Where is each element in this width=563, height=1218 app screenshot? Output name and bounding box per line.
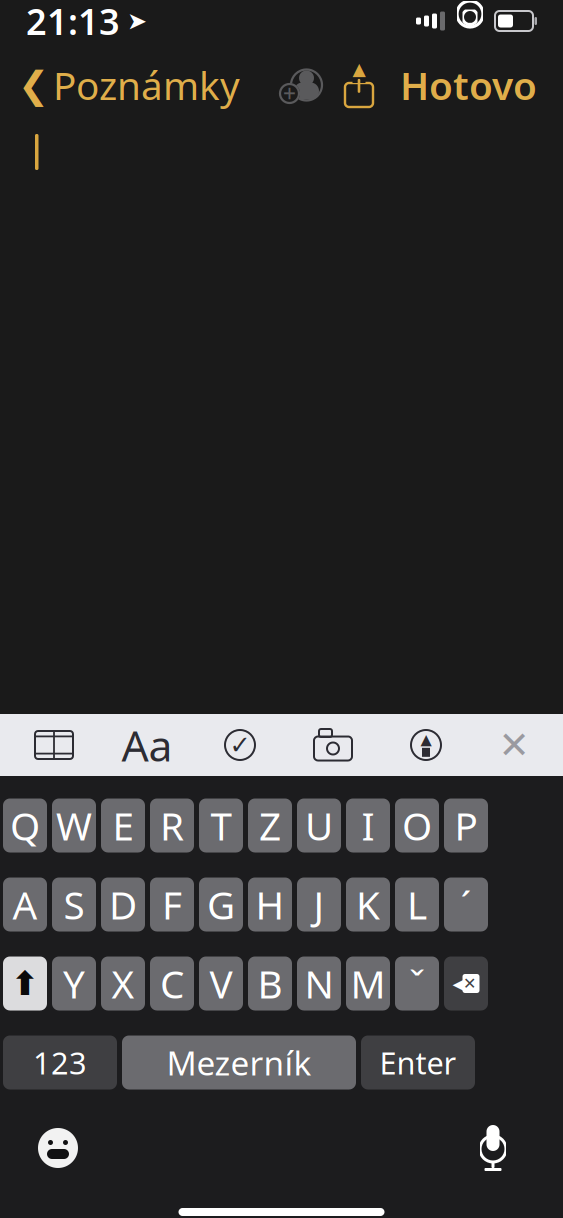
staticText: Y — [63, 958, 85, 1009]
button[interactable]: Emoji — [28, 1118, 88, 1178]
button[interactable]: H — [248, 877, 292, 931]
button[interactable]: Shift — [3, 956, 47, 1010]
button[interactable]: 123 — [3, 1035, 117, 1089]
staticText: M — [350, 958, 385, 1009]
button[interactable]: B — [248, 956, 292, 1010]
staticText: A — [12, 879, 37, 930]
button[interactable]: Y — [52, 956, 96, 1010]
staticText: ❮ — [18, 64, 49, 106]
staticText: X — [111, 958, 134, 1009]
staticText: H — [255, 879, 284, 930]
staticText: F — [162, 879, 182, 930]
button[interactable]: D — [101, 877, 145, 931]
button[interactable]: M — [346, 956, 390, 1010]
staticText: ✓ — [229, 731, 250, 759]
staticText: V — [209, 958, 232, 1009]
staticText: Z — [259, 800, 281, 851]
button[interactable]: Hotovo — [388, 51, 549, 119]
button[interactable]: S — [52, 877, 96, 931]
staticText: K — [356, 879, 380, 930]
staticText: ◀ — [452, 972, 467, 995]
button[interactable]: E — [101, 798, 145, 852]
button[interactable]: Checklist — [208, 717, 272, 773]
staticText: Poznámky — [53, 59, 240, 111]
button[interactable]: Format — [115, 717, 179, 773]
button[interactable]: U — [297, 798, 341, 852]
staticText: ➤ — [127, 7, 147, 35]
button[interactable]: Z — [248, 798, 292, 852]
staticText: Hotovo — [400, 59, 537, 111]
button[interactable]: Dictate — [463, 1118, 523, 1178]
staticText: + — [283, 78, 296, 108]
button[interactable]: K — [346, 877, 390, 931]
staticText: P — [454, 800, 477, 851]
staticText: L — [407, 879, 427, 930]
staticText: N — [304, 958, 333, 1009]
button[interactable]: Markup — [394, 717, 458, 773]
staticText: ´ — [460, 879, 471, 930]
button[interactable]: Table — [22, 717, 86, 773]
button[interactable]: O — [395, 798, 439, 852]
button[interactable]: V — [199, 956, 243, 1010]
button[interactable]: G — [199, 877, 243, 931]
staticText: ✕ — [463, 974, 476, 993]
staticText: I — [361, 800, 374, 851]
staticText: ▲ — [420, 731, 431, 748]
staticText: Q — [10, 800, 40, 851]
staticText: Aa — [121, 717, 172, 773]
staticText: ⬆ — [11, 965, 39, 1002]
staticText: ▲ — [352, 59, 365, 79]
staticText: R — [160, 800, 184, 851]
button[interactable]: ❮ — [8, 51, 250, 119]
button[interactable]: R — [150, 798, 194, 852]
staticText: T — [210, 800, 231, 851]
button[interactable]: Enter — [361, 1035, 475, 1089]
button[interactable]: F — [150, 877, 194, 931]
button[interactable]: N — [297, 956, 341, 1010]
staticText: ✕ — [498, 724, 529, 766]
button[interactable]: P — [444, 798, 488, 852]
staticText: D — [109, 879, 137, 930]
button[interactable]: C — [150, 956, 194, 1010]
staticText: C — [160, 958, 184, 1009]
button[interactable]: Add People — [272, 59, 330, 111]
staticText: E — [112, 800, 133, 851]
staticText: S — [63, 879, 84, 930]
button[interactable]: Hide Keyboard — [487, 717, 541, 773]
staticText: Enter — [379, 1042, 456, 1083]
button[interactable]: Mezerník — [122, 1035, 356, 1089]
staticText: 21:13 — [26, 0, 120, 45]
button[interactable]: I — [346, 798, 390, 852]
button[interactable]: W — [52, 798, 96, 852]
button[interactable]: ´ — [444, 877, 488, 931]
staticText: U — [305, 800, 333, 851]
button[interactable]: X — [101, 956, 145, 1010]
button[interactable]: Share — [330, 59, 388, 111]
staticText: 123 — [33, 1042, 87, 1083]
button[interactable]: J — [297, 877, 341, 931]
button[interactable]: Camera — [301, 717, 365, 773]
staticText: ˇ — [409, 958, 425, 1009]
staticText: O — [402, 800, 432, 851]
staticText: G — [207, 879, 235, 930]
staticText: J — [313, 879, 324, 930]
staticText: B — [257, 958, 282, 1009]
button[interactable]: Q — [3, 798, 47, 852]
button[interactable]: ˇ — [395, 956, 439, 1010]
button[interactable]: L — [395, 877, 439, 931]
staticText: W — [56, 800, 92, 851]
button[interactable]: Delete — [444, 956, 488, 1010]
button[interactable]: T — [199, 798, 243, 852]
button[interactable]: A — [3, 877, 47, 931]
staticText: Mezerník — [166, 1040, 311, 1085]
